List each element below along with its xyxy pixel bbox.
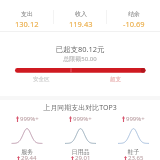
staticText: 结余 [128, 10, 140, 18]
button[interactable]: 999%+ [107, 114, 160, 160]
staticText: 23.65 [128, 154, 144, 160]
staticText: 130.12 [15, 19, 39, 29]
staticText: -10.69 [123, 19, 145, 29]
staticText: 999%+ [126, 115, 145, 123]
button[interactable]: 999%+ [54, 114, 107, 160]
staticText: 999%+ [73, 115, 92, 123]
staticText: 29.44 [21, 154, 37, 160]
staticText: 日用品 [54, 148, 107, 156]
button[interactable]: 999%+ [0, 114, 54, 160]
staticText: 服务 [0, 148, 54, 156]
staticText: 已超支80.12元 [0, 44, 160, 54]
button[interactable]: 支出 [0, 10, 54, 29]
button[interactable]: 结余 [107, 10, 160, 29]
staticText: 超支 [110, 76, 121, 83]
staticText: 支出 [21, 10, 33, 18]
staticText: 总限额50.00 [0, 55, 160, 63]
staticText: 安全区 [33, 76, 50, 83]
staticText: 119.43 [69, 19, 93, 29]
button[interactable]: 收入 [54, 10, 107, 29]
staticText: 收入 [75, 10, 87, 18]
staticText: 鞋子 [107, 148, 160, 156]
staticText: 29.01 [75, 154, 91, 160]
staticText: 999%+ [20, 115, 39, 123]
staticText: 上月同期支出对比TOP3 [0, 103, 160, 113]
